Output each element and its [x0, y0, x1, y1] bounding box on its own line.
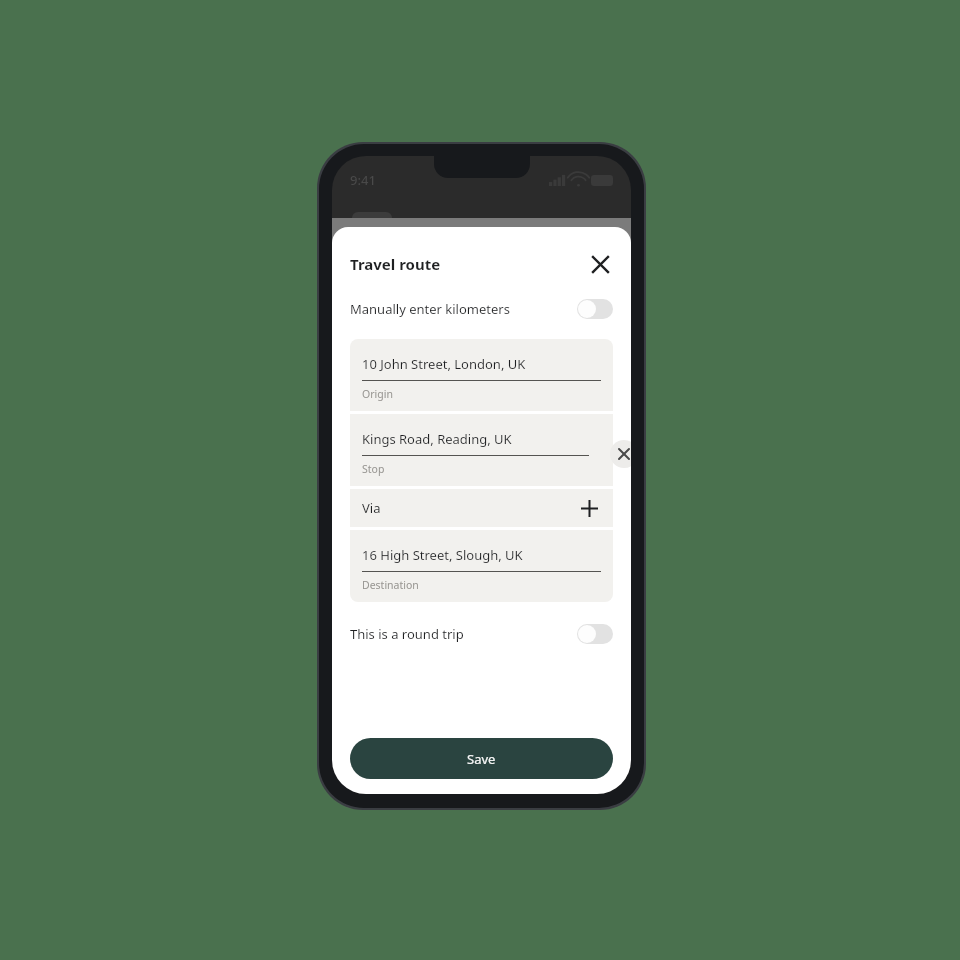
button[interactable]: 10 John Street, London, UK: [350, 339, 613, 411]
staticText: Manually enter kilometers: [350, 300, 510, 318]
button[interactable]: Remove stop: [610, 440, 631, 468]
staticText: Kings Road, Reading, UK: [362, 430, 512, 448]
staticText: This is a round trip: [350, 625, 464, 643]
button[interactable]: Via: [350, 489, 613, 527]
other: Add via stop: [578, 497, 600, 519]
button[interactable]: Save: [350, 738, 613, 779]
button[interactable]: Manually enter kilometers: [332, 291, 631, 327]
staticText: Via: [362, 499, 381, 517]
staticText: Origin: [362, 387, 393, 401]
button[interactable]: Close: [583, 247, 617, 281]
staticText: Destination: [362, 578, 419, 592]
button[interactable]: Kings Road, Reading, UK: [350, 414, 613, 486]
staticText: 10 John Street, London, UK: [362, 355, 526, 373]
staticText: Stop: [362, 462, 385, 476]
staticText: 16 High Street, Slough, UK: [362, 546, 523, 564]
button[interactable]: This is a round trip: [332, 616, 631, 652]
staticText: Save: [467, 750, 496, 768]
staticText: 9:41: [350, 171, 376, 189]
staticText: Travel route: [350, 254, 441, 274]
button[interactable]: 16 High Street, Slough, UK: [350, 530, 613, 602]
